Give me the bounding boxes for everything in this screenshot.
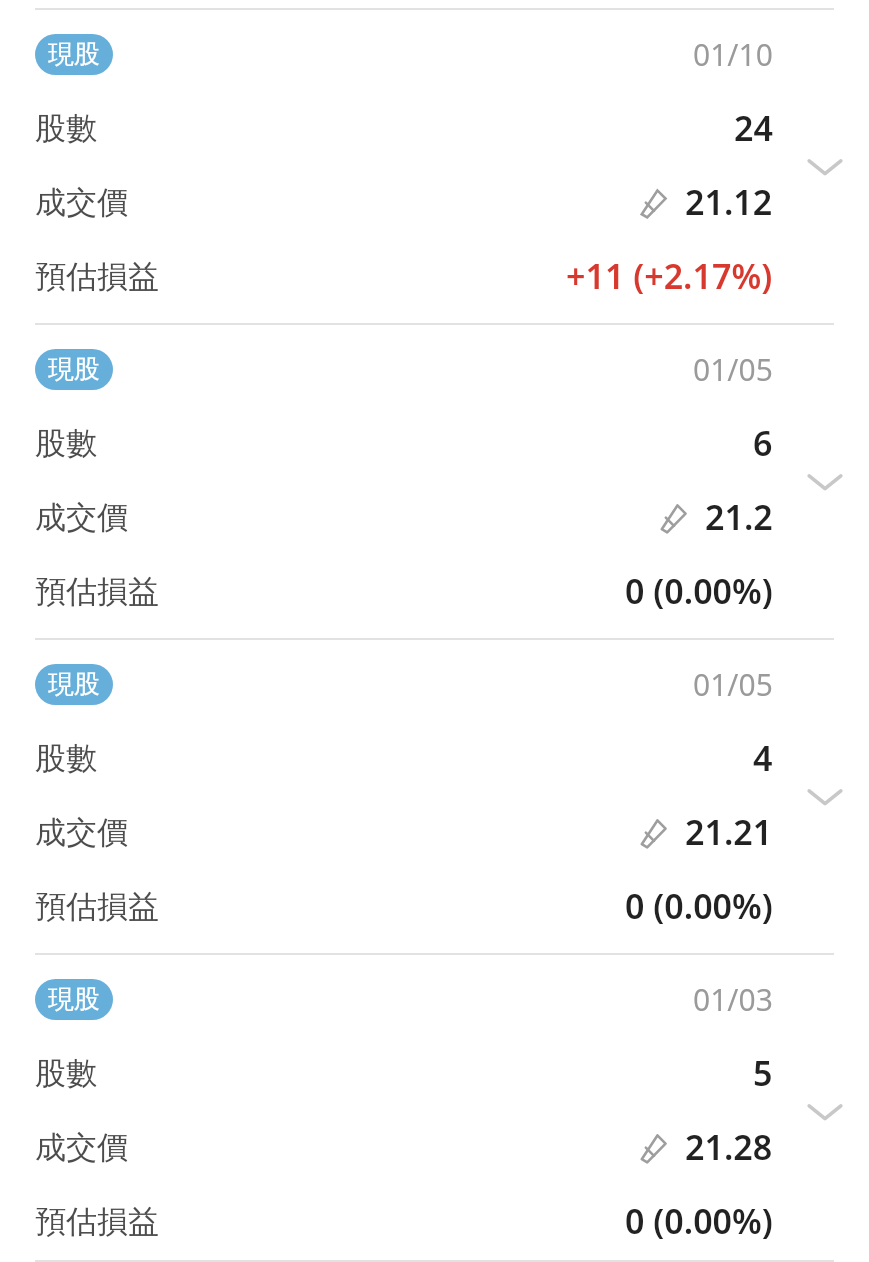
- staticText: +11 (+2.17%): [566, 253, 773, 299]
- button[interactable]: 現股: [0, 332, 869, 630]
- button[interactable]: 成交價: [0, 480, 869, 554]
- button[interactable]: 股數: [0, 1036, 869, 1110]
- staticText: 5: [753, 1050, 773, 1096]
- staticText: 01/05: [693, 349, 773, 390]
- staticText: 21.12: [685, 179, 773, 225]
- button[interactable]: Expand: [803, 775, 847, 819]
- staticText: 現股: [48, 38, 100, 71]
- staticText: 01/03: [693, 979, 773, 1020]
- button[interactable]: 現股: [0, 647, 869, 945]
- staticText: 01/05: [693, 664, 773, 705]
- button[interactable]: 預估損益: [0, 239, 869, 313]
- staticText: 0 (0.00%): [625, 568, 773, 614]
- staticText: 現股: [48, 983, 100, 1016]
- staticText: 股數: [35, 109, 97, 148]
- button[interactable]: 股數: [0, 406, 869, 480]
- staticText: 成交價: [35, 813, 128, 852]
- staticText: 預估損益: [35, 1202, 159, 1241]
- staticText: 股數: [35, 424, 97, 463]
- staticText: 現股: [48, 668, 100, 701]
- button[interactable]: 現股: [0, 962, 869, 1260]
- staticText: 預估損益: [35, 887, 159, 926]
- button[interactable]: 成交價: [0, 1110, 869, 1184]
- button[interactable]: 預估損益: [0, 1184, 869, 1258]
- staticText: 24: [734, 105, 773, 151]
- staticText: 成交價: [35, 1128, 128, 1167]
- button[interactable]: 現股: [35, 34, 113, 75]
- button[interactable]: 現股: [35, 349, 113, 390]
- button[interactable]: 預估損益: [0, 554, 869, 628]
- button[interactable]: 成交價: [0, 165, 869, 239]
- staticText: 0 (0.00%): [625, 883, 773, 929]
- staticText: 預估損益: [35, 257, 159, 296]
- button[interactable]: 現股: [35, 664, 113, 705]
- staticText: 成交價: [35, 183, 128, 222]
- staticText: 01/10: [693, 34, 773, 75]
- button[interactable]: 現股: [0, 17, 869, 315]
- button[interactable]: 股數: [0, 721, 869, 795]
- button[interactable]: 股數: [0, 91, 869, 165]
- staticText: 21.28: [685, 1124, 773, 1170]
- staticText: 4: [753, 735, 773, 781]
- staticText: 0 (0.00%): [625, 1198, 773, 1244]
- button[interactable]: 現股: [35, 979, 113, 1020]
- staticText: 現股: [48, 353, 100, 386]
- button[interactable]: 成交價: [0, 795, 869, 869]
- staticText: 預估損益: [35, 572, 159, 611]
- staticText: 21.2: [705, 494, 773, 540]
- button[interactable]: Expand: [803, 1090, 847, 1134]
- button[interactable]: Expand: [803, 145, 847, 189]
- staticText: 成交價: [35, 498, 128, 537]
- staticText: 21.21: [685, 809, 773, 855]
- button[interactable]: Expand: [803, 460, 847, 504]
- staticText: 6: [753, 420, 773, 466]
- button[interactable]: 預估損益: [0, 869, 869, 943]
- staticText: 股數: [35, 1054, 97, 1093]
- staticText: 股數: [35, 739, 97, 778]
